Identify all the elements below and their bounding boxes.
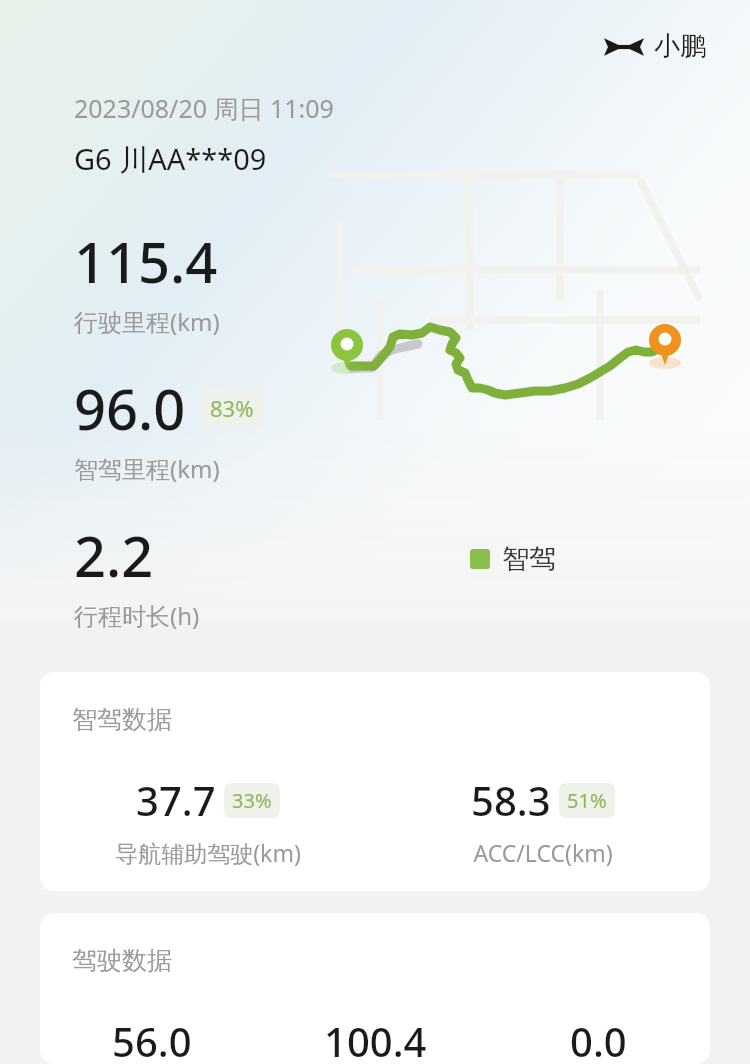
staticText: 2.2 — [74, 517, 154, 593]
staticText: 96.0 — [74, 370, 186, 446]
staticText: 33% — [232, 787, 272, 814]
staticText: 行驶里程(km) — [74, 305, 220, 338]
staticText: 小鹏 — [654, 30, 706, 63]
button[interactable]: 智驾 — [470, 542, 556, 576]
staticText: 导航辅助驾驶(km) — [115, 837, 301, 868]
staticText: ACC/LCC(km) — [473, 837, 613, 868]
staticText: 115.4 — [74, 223, 218, 299]
staticText: 驾驶数据 — [72, 945, 172, 976]
button[interactable]: 驾驶数据 — [40, 913, 710, 1064]
staticText: 2023/08/20 周日 11:09 — [74, 91, 334, 125]
staticText: 行程时长(h) — [74, 599, 200, 632]
staticText: 智驾数据 — [72, 704, 172, 735]
staticText: 0.0 — [570, 1014, 627, 1064]
staticText: 58.3 — [471, 773, 551, 827]
staticText: 37.7 — [136, 773, 216, 827]
staticText: 智驾里程(km) — [74, 452, 220, 485]
button[interactable]: 智驾数据 — [40, 672, 710, 891]
staticText: 智驾 — [502, 542, 556, 576]
staticText: G6 川AA***09 — [74, 139, 267, 179]
button[interactable]: XPeng logo — [600, 26, 710, 67]
staticText: 51% — [567, 787, 607, 814]
staticText: 83% — [210, 393, 254, 423]
staticText: 56.0 — [112, 1014, 192, 1064]
staticText: 100.4 — [324, 1014, 427, 1064]
